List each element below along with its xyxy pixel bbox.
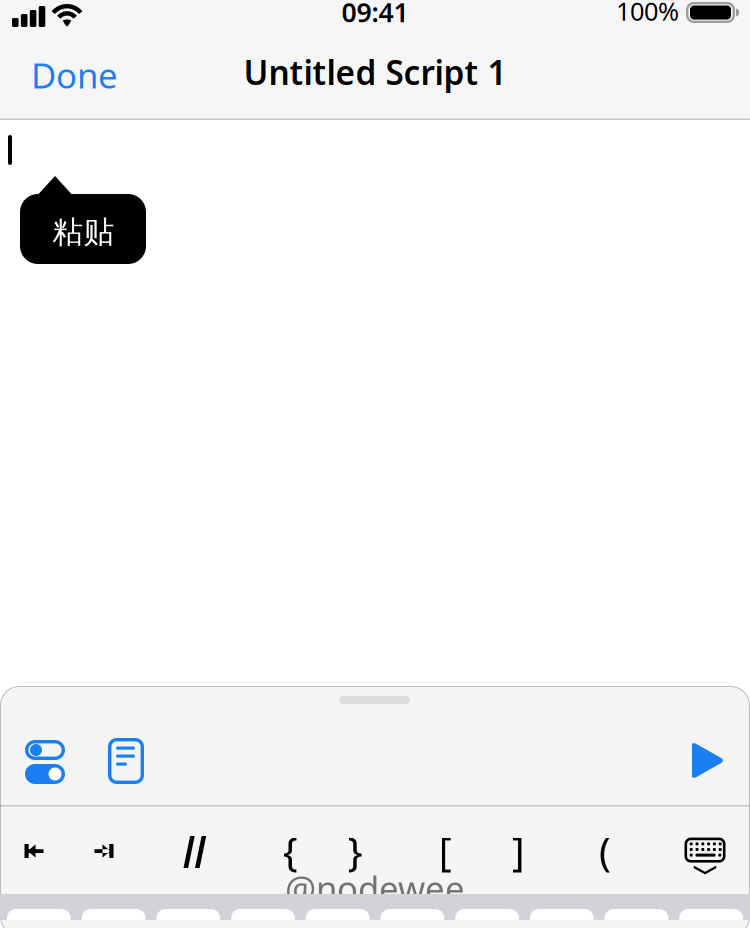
button[interactable]: Run script [678, 728, 735, 793]
button[interactable]: Done [14, 41, 135, 109]
button[interactable]: Hide Keyboard [665, 819, 745, 893]
button[interactable]: { [250, 814, 330, 888]
staticText: 粘贴 [52, 213, 114, 251]
staticText: ( [599, 824, 611, 877]
staticText: Done [31, 52, 118, 98]
button[interactable]: Documentation [96, 724, 156, 798]
button[interactable]: Outdent [0, 814, 69, 888]
staticText: 09:41 [341, 0, 408, 30]
staticText: @nodewee [285, 865, 465, 911]
button[interactable]: [ [405, 814, 485, 888]
staticText: [ [438, 824, 451, 877]
button[interactable]: Comment [155, 815, 235, 889]
staticText: Untitled Script 1 [243, 50, 506, 94]
button[interactable]: ( [565, 814, 645, 888]
staticText: { [282, 824, 297, 877]
staticText: ] [511, 824, 524, 877]
button[interactable]: } [315, 814, 395, 888]
staticText: } [347, 824, 362, 877]
button[interactable]: ] [478, 814, 558, 888]
button[interactable]: Indent [69, 814, 139, 888]
button[interactable]: Settings [13, 726, 77, 798]
staticText: 100% [616, 0, 679, 28]
